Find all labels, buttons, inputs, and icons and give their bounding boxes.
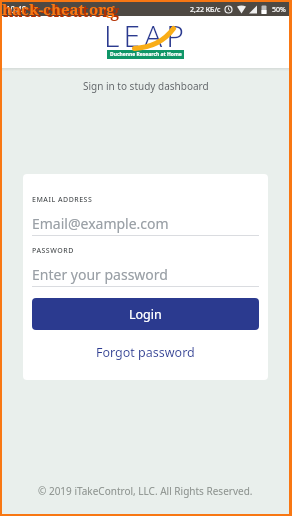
staticText: hack-cheat.org [2,0,115,19]
button[interactable]: Email@example.com [32,214,259,233]
staticText: EMAIL ADDRESS [32,195,93,205]
staticText: Forgot password [96,344,195,361]
button[interactable]: Enter your password [32,265,259,284]
staticText: Enter your password [32,265,168,284]
button[interactable]: Forgot password [92,340,199,365]
button[interactable]: Login [32,298,259,330]
staticText: PASSWORD [32,246,74,256]
staticText: 2,22 КБ/с [190,5,221,15]
staticText: LEAP [104,15,188,56]
staticText: Duchenne Research at Home [110,51,182,58]
staticText: 10:40 [6,4,27,15]
staticText: 50% [272,5,286,15]
staticText: © 2019 iTakeControl, LLC. All Rights Res… [38,484,253,498]
staticText: Email@example.com [32,214,169,233]
staticText: Login [129,306,162,323]
staticText: Sign in to study dashboard [83,79,209,93]
staticText: hack-cheat.org [3,0,120,21]
